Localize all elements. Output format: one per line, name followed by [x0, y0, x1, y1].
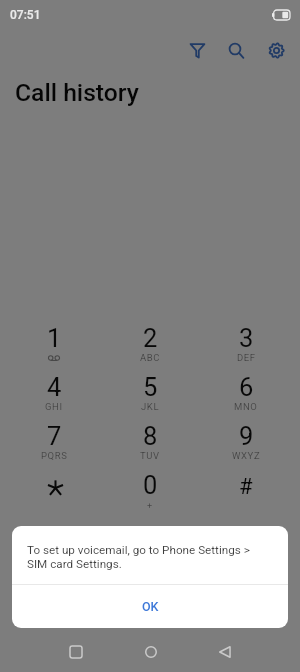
- staticText: 4: [47, 372, 62, 402]
- staticText: 7: [47, 421, 62, 451]
- button[interactable]: OK: [12, 585, 288, 628]
- staticText: MNO: [234, 401, 258, 412]
- staticText: 1: [47, 323, 62, 353]
- staticText: PQRS: [41, 450, 68, 461]
- button[interactable]: 8: [102, 412, 198, 461]
- staticText: 8: [143, 421, 158, 451]
- staticText: GHI: [45, 401, 63, 412]
- staticText: 2: [143, 323, 158, 353]
- staticText: +: [147, 501, 153, 512]
- button[interactable]: Search: [220, 34, 252, 66]
- button[interactable]: Settings: [260, 34, 292, 66]
- button[interactable]: 1: [6, 314, 102, 363]
- button[interactable]: 7: [6, 412, 102, 461]
- staticText: Call history: [15, 78, 139, 107]
- button[interactable]: 6: [198, 363, 294, 412]
- staticText: OK: [142, 599, 159, 614]
- staticText: 5: [143, 372, 158, 402]
- staticText: 9: [239, 421, 254, 451]
- button[interactable]: 5: [102, 363, 198, 412]
- button[interactable]: Recents: [53, 631, 98, 672]
- staticText: To set up voicemail, go to Phone Setting…: [27, 543, 250, 571]
- button[interactable]: 0: [102, 461, 198, 510]
- staticText: TUV: [140, 450, 160, 461]
- button[interactable]: #: [198, 461, 294, 510]
- button[interactable]: Filter: [181, 34, 213, 66]
- staticText: WXYZ: [232, 450, 261, 461]
- staticText: 6: [239, 372, 254, 402]
- button[interactable]: [6, 461, 102, 510]
- button[interactable]: 3: [198, 314, 294, 363]
- button[interactable]: Back: [202, 631, 247, 672]
- staticText: #: [239, 474, 253, 500]
- button[interactable]: Home: [128, 631, 173, 672]
- staticText: 0: [143, 470, 158, 500]
- staticText: 07:51: [10, 8, 41, 22]
- button[interactable]: 4: [6, 363, 102, 412]
- button[interactable]: 2: [102, 314, 198, 363]
- staticText: DEF: [237, 352, 256, 363]
- staticText: 3: [239, 323, 254, 353]
- button[interactable]: 9: [198, 412, 294, 461]
- staticText: ABC: [140, 352, 161, 363]
- staticText: JKL: [141, 401, 160, 412]
